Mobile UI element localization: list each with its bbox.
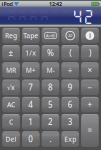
staticText: C (9, 117, 13, 126)
button[interactable]: ) (81, 45, 99, 60)
staticText: 4 (28, 99, 33, 110)
staticText: 8 (48, 82, 53, 93)
staticText: MR (6, 66, 16, 75)
button[interactable]: . (42, 131, 59, 147)
button[interactable]: 9 (61, 80, 79, 95)
staticText: 6 (68, 99, 73, 110)
button[interactable]: Del (2, 131, 20, 147)
button[interactable]: 4 (22, 97, 40, 112)
staticText: iPod (1, 0, 12, 7)
button[interactable]: √x (2, 80, 20, 95)
button[interactable]: Convert A to B (42, 28, 59, 43)
staticText: 1/x (25, 48, 36, 57)
button[interactable]: + (81, 97, 99, 112)
staticText: × (87, 65, 92, 75)
button[interactable]: × (81, 62, 99, 78)
staticText: 42 (72, 7, 94, 25)
button[interactable]: Constants (61, 28, 79, 43)
button[interactable]: = (81, 114, 99, 147)
button[interactable]: Reg (2, 28, 20, 43)
staticText: . (49, 134, 51, 144)
button[interactable]: 2 (42, 114, 59, 129)
staticText: ( (69, 47, 71, 58)
staticText: 42 (68, 33, 72, 38)
button[interactable]: − (81, 80, 99, 95)
button[interactable]: ( (61, 45, 79, 60)
staticText: 7 (28, 82, 33, 93)
button[interactable]: Info (81, 28, 99, 43)
button[interactable]: C (2, 114, 20, 129)
button[interactable]: M+ (22, 62, 40, 78)
staticText: Del (6, 135, 17, 144)
staticText: M- (46, 66, 54, 75)
button[interactable]: % (42, 45, 59, 60)
staticText: 5 (48, 99, 53, 110)
staticText: 12:42 (49, 0, 62, 7)
staticText: 9 (68, 82, 73, 93)
button[interactable]: Tape (22, 28, 40, 43)
staticText: 1 (28, 116, 33, 127)
staticText: 888888888888 (6, 0, 94, 31)
button[interactable]: 1 (22, 114, 40, 129)
button[interactable]: 1/x (22, 45, 40, 60)
staticText: A↔B (46, 33, 55, 38)
staticText: ) (89, 47, 91, 58)
button[interactable]: 7 (22, 80, 40, 95)
staticText: i (89, 31, 91, 40)
staticText: 3 (68, 116, 73, 127)
button[interactable]: ± (2, 45, 20, 60)
button[interactable]: ÷ (61, 62, 79, 78)
staticText: AC (7, 100, 15, 109)
staticText: − (87, 82, 92, 93)
button[interactable]: 8 (42, 80, 59, 95)
button[interactable]: 6 (61, 97, 79, 112)
button[interactable]: MR (2, 62, 20, 78)
staticText: M+ (26, 66, 36, 75)
button[interactable]: Exp (61, 131, 79, 147)
button[interactable]: 5 (42, 97, 59, 112)
button[interactable]: 3 (61, 114, 79, 129)
button[interactable]: AC (2, 97, 20, 112)
staticText: Reg (5, 31, 17, 40)
staticText: = (87, 125, 92, 136)
button[interactable]: M- (42, 62, 59, 78)
staticText: Exp (64, 135, 76, 144)
staticText: % (47, 47, 54, 58)
staticText: 2 (48, 116, 53, 127)
staticText: 0 (28, 134, 33, 144)
staticText: Tape (23, 31, 38, 40)
staticText: + (87, 99, 92, 110)
button[interactable]: 0 (22, 131, 40, 147)
staticText: ± (9, 47, 14, 58)
staticText: ÷ (68, 65, 73, 75)
staticText: √x (7, 83, 15, 92)
